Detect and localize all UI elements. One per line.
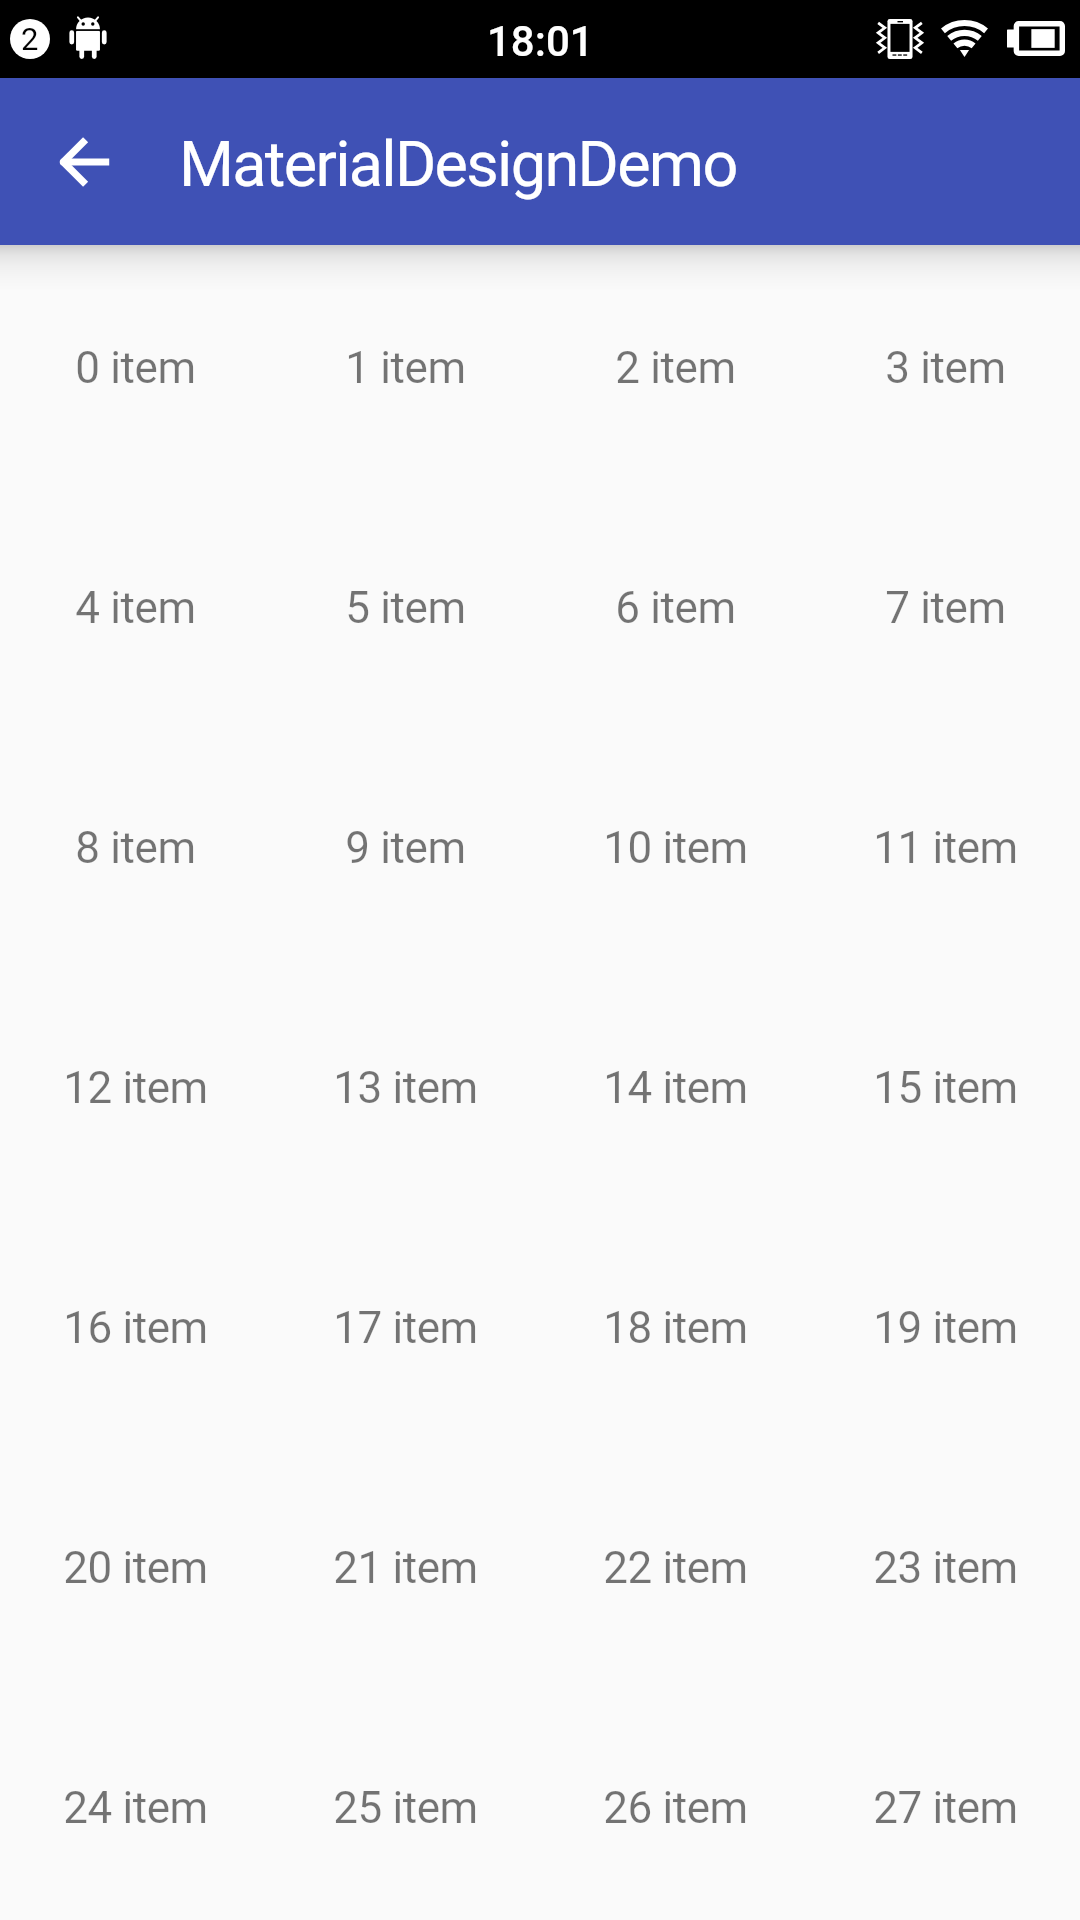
button[interactable]: 16 item: [0, 1205, 270, 1445]
button[interactable]: 24 item: [0, 1685, 270, 1920]
staticText: 26 item: [603, 1782, 748, 1834]
button[interactable]: 27 item: [810, 1685, 1080, 1920]
staticText: 18:01: [487, 17, 594, 66]
staticText: 16 item: [63, 1302, 208, 1354]
button[interactable]: 15 item: [810, 965, 1080, 1205]
staticText: 18 item: [603, 1302, 748, 1354]
staticText: 6 item: [615, 582, 736, 634]
button[interactable]: 3 item: [810, 245, 1080, 485]
staticText: 21 item: [333, 1542, 478, 1594]
staticText: 12 item: [63, 1062, 208, 1114]
button[interactable]: 26 item: [540, 1685, 810, 1920]
staticText: 17 item: [333, 1302, 478, 1354]
staticText: MaterialDesignDemo: [179, 128, 737, 202]
staticText: 14 item: [603, 1062, 748, 1114]
button[interactable]: 1 item: [270, 245, 540, 485]
button[interactable]: 14 item: [540, 965, 810, 1205]
staticText: 10 item: [603, 822, 748, 874]
staticText: 15 item: [873, 1062, 1018, 1114]
staticText: 0 item: [75, 342, 196, 394]
button[interactable]: 2 item: [540, 245, 810, 485]
button[interactable]: 18 item: [540, 1205, 810, 1445]
staticText: 27 item: [873, 1782, 1018, 1834]
button[interactable]: 25 item: [270, 1685, 540, 1920]
staticText: 13 item: [333, 1062, 478, 1114]
staticText: 4 item: [75, 582, 196, 634]
button[interactable]: Navigate up: [12, 90, 156, 234]
button[interactable]: 19 item: [810, 1205, 1080, 1445]
button[interactable]: 4 item: [0, 485, 270, 725]
staticText: 7 item: [885, 582, 1006, 634]
button[interactable]: 5 item: [270, 485, 540, 725]
staticText: 3 item: [885, 342, 1006, 394]
staticText: 20 item: [63, 1542, 208, 1594]
staticText: 2 item: [615, 342, 736, 394]
button[interactable]: 8 item: [0, 725, 270, 965]
button[interactable]: 23 item: [810, 1445, 1080, 1685]
staticText: 19 item: [873, 1302, 1018, 1354]
button[interactable]: 11 item: [810, 725, 1080, 965]
staticText: 9 item: [345, 822, 466, 874]
button[interactable]: 10 item: [540, 725, 810, 965]
button[interactable]: 21 item: [270, 1445, 540, 1685]
staticText: 22 item: [603, 1542, 748, 1594]
staticText: 8 item: [75, 822, 196, 874]
staticText: 2: [21, 21, 39, 57]
staticText: 1 item: [345, 342, 466, 394]
staticText: 25 item: [333, 1782, 478, 1834]
button[interactable]: 20 item: [0, 1445, 270, 1685]
staticText: 24 item: [63, 1782, 208, 1834]
staticText: 11 item: [873, 822, 1018, 874]
button[interactable]: 7 item: [810, 485, 1080, 725]
staticText: 23 item: [873, 1542, 1018, 1594]
button[interactable]: 0 item: [0, 245, 270, 485]
staticText: 5 item: [345, 582, 466, 634]
button[interactable]: 17 item: [270, 1205, 540, 1445]
button[interactable]: 9 item: [270, 725, 540, 965]
button[interactable]: 6 item: [540, 485, 810, 725]
button[interactable]: 12 item: [0, 965, 270, 1205]
button[interactable]: 13 item: [270, 965, 540, 1205]
button[interactable]: 22 item: [540, 1445, 810, 1685]
